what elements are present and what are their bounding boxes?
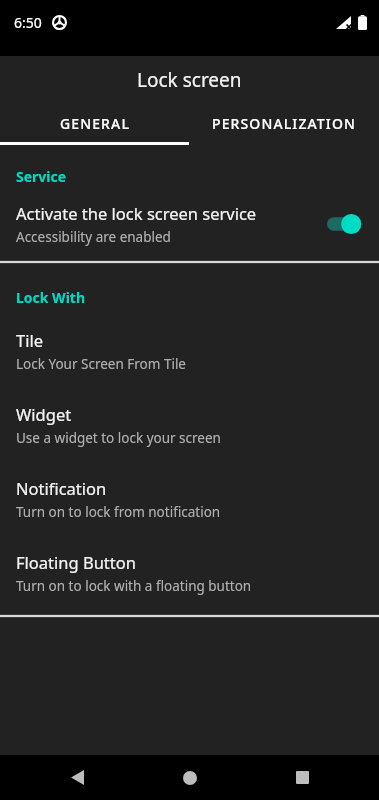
button[interactable]: Widget [0, 403, 379, 447]
staticText: Activate the lock screen service [16, 202, 257, 224]
button[interactable]: Recent apps [267, 755, 337, 800]
staticText: Turn on to lock from notification [16, 503, 221, 521]
staticText: PERSONALIZATION [212, 114, 357, 133]
staticText: Accessibility are enabled [16, 228, 171, 246]
button[interactable]: PERSONALIZATION [189, 104, 379, 142]
button[interactable]: Floating Button [0, 551, 379, 595]
staticText: Service [16, 167, 67, 186]
staticText: GENERAL [60, 114, 130, 133]
staticText: Use a widget to lock your screen [16, 429, 221, 447]
staticText: Lock With [16, 288, 86, 307]
button[interactable]: Activate the lock screen service toggle [327, 212, 363, 236]
button[interactable]: Back [42, 755, 112, 800]
button[interactable]: GENERAL [0, 104, 189, 142]
staticText: Notification [16, 477, 107, 499]
button[interactable]: Home [155, 755, 225, 800]
staticText: Lock Your Screen From Tile [16, 355, 186, 373]
button[interactable]: Notification [0, 477, 379, 521]
staticText: Tile [16, 329, 43, 351]
staticText: Turn on to lock with a floating button [16, 577, 252, 595]
staticText: Widget [16, 403, 72, 425]
button[interactable]: Tile [0, 329, 379, 373]
staticText: 6:50 [14, 13, 42, 32]
button[interactable]: Activate the lock screen service [0, 200, 379, 248]
staticText: Lock screen [137, 67, 242, 93]
staticText: Floating Button [16, 551, 136, 573]
